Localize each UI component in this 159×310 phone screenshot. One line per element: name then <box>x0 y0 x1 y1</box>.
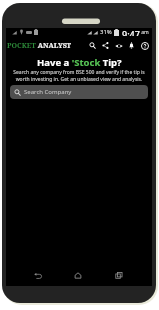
staticText: POCKET ANALYST <box>7 41 72 51</box>
button[interactable]: Recents <box>112 265 126 285</box>
button[interactable]: Notifications <box>125 36 138 55</box>
staticText: Search Company <box>24 88 72 96</box>
staticText: Search any company from BSE 500 and veri… <box>10 69 148 82</box>
button[interactable]: Search Company <box>10 85 148 99</box>
button[interactable]: Home <box>71 265 85 285</box>
staticText: 9:47 <box>122 28 140 36</box>
button[interactable]: Share <box>99 36 112 55</box>
button[interactable]: Back <box>31 265 45 285</box>
staticText: am <box>140 29 149 36</box>
button[interactable]: Help <box>138 36 151 55</box>
staticText: Have a 'Stock Tip? <box>37 56 122 69</box>
staticText: 31% <box>100 28 112 36</box>
button[interactable]: Watchlist <box>112 36 125 55</box>
button[interactable]: Search <box>86 36 99 55</box>
